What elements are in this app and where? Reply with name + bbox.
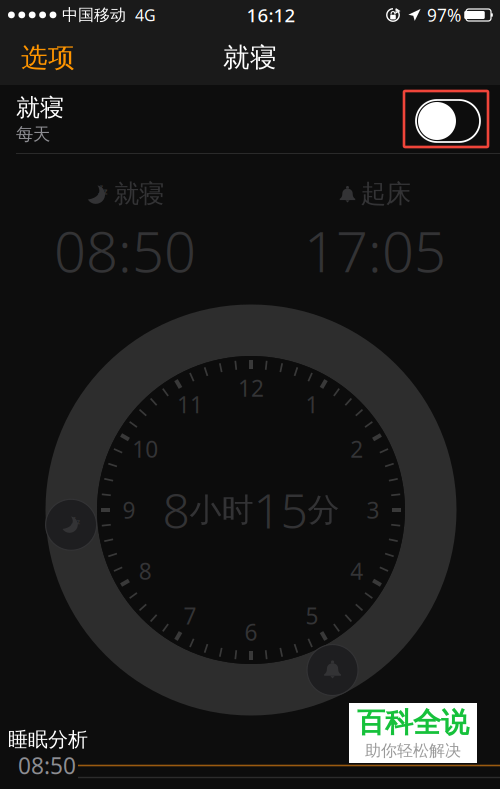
staticText: 1: [305, 389, 318, 419]
staticText: 12: [238, 373, 264, 403]
staticText: 分: [307, 490, 339, 530]
staticText: 中国移动: [62, 5, 126, 25]
staticText: 5: [305, 601, 318, 631]
staticText: 97%: [427, 3, 461, 26]
staticText: z: [77, 517, 80, 526]
staticText: z: [73, 514, 76, 521]
staticText: 7: [183, 601, 196, 631]
button[interactable]: 就寝开关: [405, 89, 491, 149]
button[interactable]: z: [0, 190, 250, 276]
staticText: 百科全说: [357, 705, 469, 740]
staticText: 就寝: [223, 41, 277, 74]
staticText: 10: [132, 434, 158, 464]
staticText: 8: [162, 478, 189, 542]
staticText: 17:05: [304, 213, 446, 288]
button[interactable]: 睡眠分析: [0, 727, 500, 788]
staticText: 2: [350, 434, 363, 464]
staticText: 4: [350, 556, 363, 586]
staticText: 08:50: [54, 213, 196, 288]
staticText: z: [100, 183, 103, 191]
staticText: 16:12: [246, 3, 295, 27]
staticText: 4G: [135, 4, 156, 26]
staticText: 每天: [16, 124, 50, 145]
button[interactable]: z: [43, 497, 99, 553]
staticText: 起床: [361, 178, 411, 209]
button[interactable]: 起床: [250, 190, 500, 276]
button[interactable]: 选项: [0, 30, 87, 85]
staticText: z: [71, 519, 76, 531]
staticText: 助你轻松解决: [365, 741, 461, 761]
staticText: 睡眠分析: [8, 727, 88, 752]
staticText: 8: [139, 556, 152, 586]
staticText: 6: [244, 617, 257, 647]
staticText: 选项: [21, 41, 75, 74]
staticText: 11: [177, 389, 203, 419]
staticText: z: [98, 188, 103, 202]
staticText: 15: [253, 478, 307, 542]
staticText: z: [103, 186, 107, 197]
button[interactable]: [304, 642, 360, 698]
staticText: 就寝: [16, 93, 64, 123]
staticText: 3: [366, 495, 379, 525]
staticText: 9: [122, 495, 135, 525]
staticText: 小时: [189, 490, 253, 530]
staticText: 就寝: [114, 178, 164, 209]
staticText: 08:50: [18, 750, 76, 780]
